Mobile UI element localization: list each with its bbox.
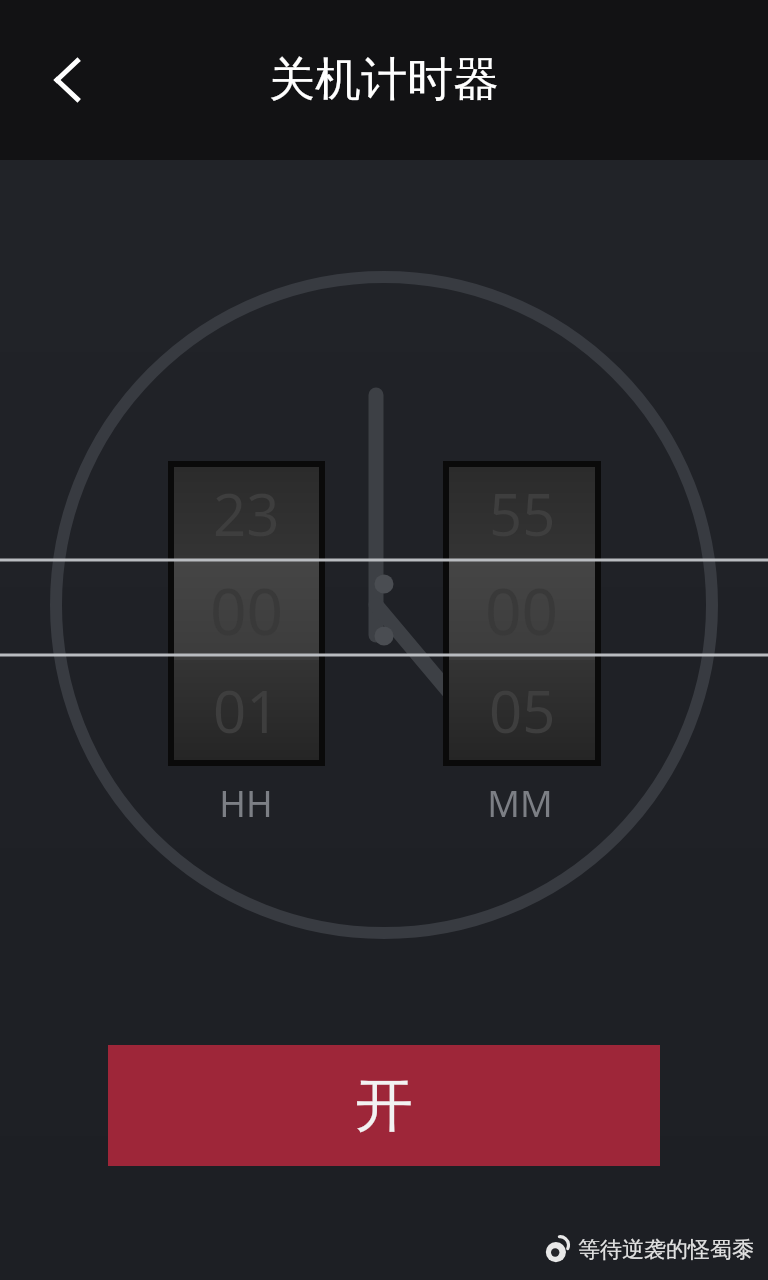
staticText: 23	[213, 474, 280, 553]
staticText: 等待逆袭的怪蜀黍	[578, 1236, 754, 1264]
staticText: HH	[196, 779, 296, 828]
staticText: 55	[489, 474, 556, 553]
button[interactable]: 55	[443, 461, 601, 766]
staticText: 开	[355, 1069, 413, 1142]
staticText: 01	[213, 671, 280, 750]
button[interactable]: 23	[168, 461, 325, 766]
staticText: 00	[485, 567, 559, 654]
staticText: 关机计时器	[269, 51, 499, 109]
button[interactable]: 开	[108, 1045, 660, 1166]
staticText: 05	[489, 671, 556, 750]
staticText: 00	[210, 567, 284, 654]
button[interactable]: Back	[14, 0, 124, 160]
staticText: MM	[470, 779, 570, 828]
